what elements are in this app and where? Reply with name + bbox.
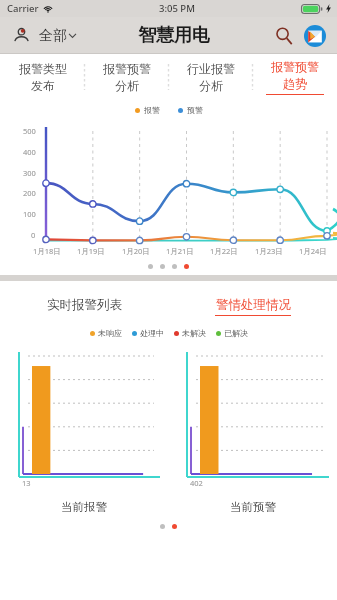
staticText: 发布 [31,78,55,93]
staticText: 报警类型 [19,61,67,76]
staticText: 已解决 [224,328,248,338]
staticText: 500 [23,126,36,136]
staticText: 300 [23,168,36,178]
staticText: 当前报警 [61,500,107,514]
staticText: 报警 [144,105,160,115]
staticText: 预警 [187,105,203,115]
staticText: 200 [23,188,36,198]
staticText: 全部 [39,27,67,45]
staticText: 100 [23,209,36,219]
button[interactable]: 实时报警列表 [43,293,126,317]
staticText: 0 [31,230,36,240]
button[interactable]: 报警预警 [253,54,337,99]
button[interactable]: 报警类型 [0,54,85,99]
button[interactable]: Search [270,22,297,49]
button[interactable]: Messages [301,22,328,49]
staticText: 未解决 [182,328,206,338]
staticText: 实时报警列表 [47,297,122,313]
staticText: 未响应 [98,328,122,338]
staticText: 报警预警 [103,61,151,76]
staticText: Carrier [7,2,39,15]
staticText: 402 [190,478,203,488]
staticText: 1月19日 [77,246,105,256]
staticText: 1月22日 [210,246,238,256]
staticText: 1月23日 [255,246,283,256]
staticText: 智慧用电 [138,24,210,47]
staticText: 处理中 [140,328,164,338]
button[interactable]: 报警预警 [85,54,169,99]
staticText: 分析 [199,78,223,93]
button[interactable]: 全部 [9,22,79,49]
staticText: 行业报警 [187,61,235,76]
staticText: 1月18日 [33,246,61,256]
staticText: 400 [23,147,36,157]
staticText: 趋势 [283,76,307,91]
staticText: 报警预警 [271,59,319,74]
staticText: 1月20日 [122,246,150,256]
staticText: 3:05 PM [159,2,195,15]
button[interactable]: 警情处理情况 [211,293,295,320]
staticText: 分析 [115,78,139,93]
staticText: 1月24日 [299,246,327,256]
staticText: 1月21日 [166,246,194,256]
staticText: 13 [22,478,31,488]
staticText: 警情处理情况 [216,297,291,313]
button[interactable]: 行业报警 [169,54,253,99]
staticText: 当前预警 [230,500,276,514]
